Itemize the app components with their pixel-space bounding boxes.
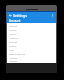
- button[interactable]: Security: [7, 60, 56, 63]
- staticText: Security: [9, 60, 18, 63]
- button[interactable]: Battery: [7, 44, 56, 48]
- button[interactable]: Display: [7, 28, 56, 32]
- button[interactable]: Storage: [7, 40, 56, 44]
- staticText: Apps: [9, 49, 15, 52]
- button[interactable]: Sound: [7, 32, 56, 36]
- staticText: Storage: [9, 41, 17, 44]
- button[interactable]: Network: [7, 36, 56, 40]
- staticText: Settings: [13, 13, 27, 18]
- staticText: Account: [9, 19, 21, 23]
- button[interactable]: More options: [50, 13, 55, 18]
- staticText: Privacy settings: [9, 53, 26, 56]
- button[interactable]: Apps: [7, 48, 56, 52]
- button[interactable]: General: [7, 24, 56, 28]
- button[interactable]: Navigate up: [8, 13, 13, 18]
- staticText: General: [9, 25, 18, 28]
- staticText: Sound: [9, 33, 16, 36]
- staticText: Location: [9, 57, 18, 60]
- staticText: Display: [9, 29, 17, 32]
- staticText: Network: [9, 37, 18, 40]
- button[interactable]: Privacy settings: [7, 52, 56, 56]
- staticText: Battery: [9, 45, 17, 48]
- button[interactable]: Location: [7, 56, 56, 60]
